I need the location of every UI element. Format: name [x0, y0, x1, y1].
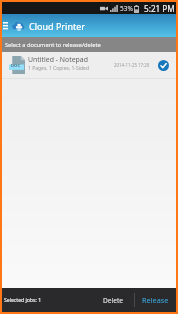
staticText: 53%: [120, 4, 133, 13]
staticText: 2014-11-25 17:20: [114, 62, 150, 68]
staticText: DOC: [11, 63, 21, 69]
staticText: Untitled - Notepad: [28, 55, 88, 64]
button[interactable]: Delete: [93, 288, 134, 312]
button[interactable]: Selected: [158, 60, 169, 71]
button[interactable]: Release: [135, 288, 176, 312]
staticText: Select a document to release/delete: [5, 41, 101, 49]
staticText: 1 Pages, 1 Copies, 1-Sided: [28, 65, 89, 72]
staticText: 5:21 PM: [144, 3, 175, 14]
staticText: Cloud Printer: [29, 20, 85, 32]
staticText: Release: [142, 295, 169, 305]
button[interactable]: DOC: [2, 52, 176, 79]
button[interactable]: Menu: [2, 14, 12, 37]
staticText: Delete: [103, 296, 124, 305]
staticText: Selected jobs: 1: [4, 297, 93, 304]
